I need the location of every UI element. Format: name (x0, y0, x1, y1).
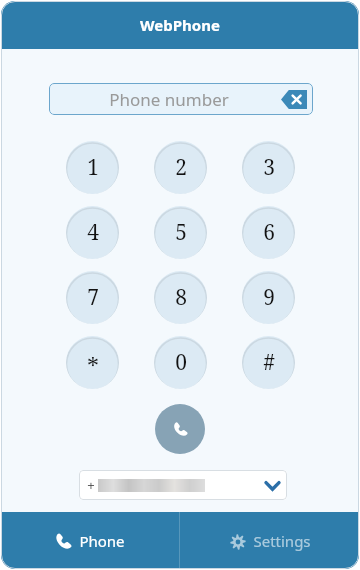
button[interactable]: 2 (154, 141, 207, 194)
button[interactable]: Settings (180, 512, 359, 569)
button[interactable]: * (66, 336, 119, 389)
button[interactable]: Phone number (49, 83, 313, 115)
staticText: * (87, 349, 99, 382)
staticText: 0 (175, 348, 187, 377)
button[interactable]: Call (155, 404, 205, 454)
staticText: 9 (263, 283, 275, 312)
staticText: 2 (175, 153, 187, 182)
staticText: 3 (263, 153, 275, 182)
staticText: + (87, 476, 95, 494)
button[interactable]: # (242, 336, 295, 389)
button[interactable]: 6 (242, 206, 295, 259)
staticText: Settings (253, 531, 311, 551)
staticText: 1 (87, 153, 99, 182)
button[interactable]: 0 (154, 336, 207, 389)
button[interactable]: 1 (66, 141, 119, 194)
staticText: 6 (263, 218, 275, 247)
button[interactable]: 9 (242, 271, 295, 324)
staticText: 5 (175, 218, 187, 247)
staticText: 8 (175, 283, 187, 312)
staticText: 7 (87, 283, 99, 312)
staticText: Phone (79, 531, 125, 551)
staticText: WebPhone (140, 15, 220, 35)
button[interactable]: 7 (66, 271, 119, 324)
button[interactable]: Backspace (281, 90, 307, 109)
staticText: 4 (87, 218, 99, 247)
staticText: Phone number (109, 88, 229, 111)
button[interactable]: 3 (242, 141, 295, 194)
button[interactable]: Phone (1, 512, 179, 569)
button[interactable]: 4 (66, 206, 119, 259)
button[interactable]: 5 (154, 206, 207, 259)
button[interactable]: + (79, 470, 287, 500)
staticText: # (263, 348, 275, 377)
button[interactable]: 8 (154, 271, 207, 324)
